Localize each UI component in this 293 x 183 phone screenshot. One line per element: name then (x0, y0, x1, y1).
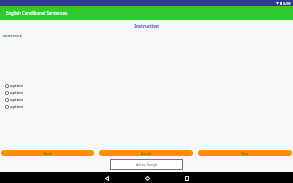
button[interactable]: Next (198, 150, 292, 156)
staticText: option (10, 104, 24, 109)
staticText: Next (241, 151, 249, 156)
button[interactable]: Back (1, 150, 94, 156)
staticText: option (10, 90, 24, 95)
button[interactable]: Result (99, 150, 193, 156)
button[interactable]: Home (142, 173, 152, 183)
button[interactable]: Recents (182, 173, 192, 183)
button[interactable]: option (5, 82, 24, 89)
staticText: Result (141, 151, 152, 156)
staticText: Ads by Google (136, 163, 158, 167)
staticText: sentence (3, 33, 23, 39)
button[interactable]: option (5, 103, 24, 110)
staticText: option (10, 97, 24, 102)
staticText: Back (44, 151, 52, 156)
staticText: Instruction (0, 23, 293, 29)
button[interactable]: option (5, 89, 24, 96)
button[interactable]: Back (102, 173, 112, 183)
staticText: option (10, 83, 24, 88)
staticText: English Conditional Sentences (6, 10, 68, 16)
button[interactable]: option (5, 96, 24, 103)
staticText: 5:59 (283, 1, 291, 6)
